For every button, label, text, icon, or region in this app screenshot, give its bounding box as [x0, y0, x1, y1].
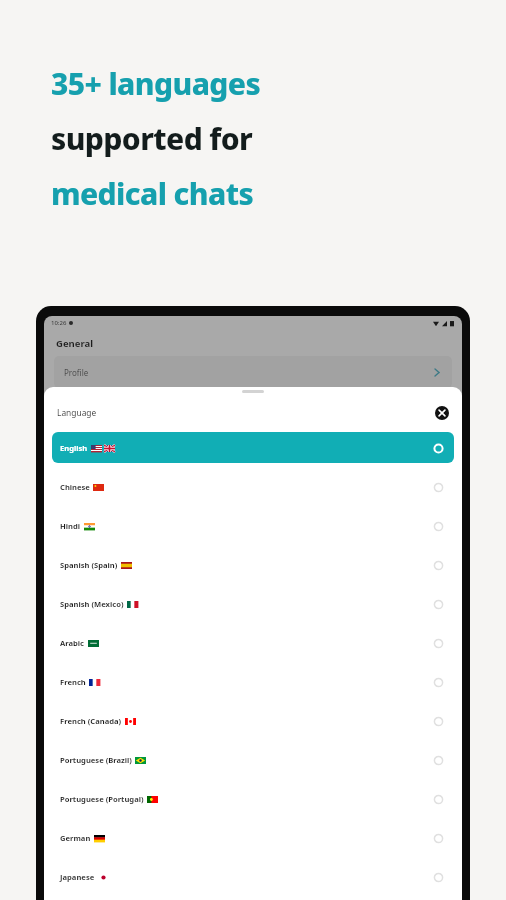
staticText: Hindi: [60, 521, 81, 531]
staticText: Japanese: [60, 872, 95, 882]
staticText: Portuguese (Portugal): [60, 794, 144, 804]
staticText: Chinese: [60, 482, 90, 492]
staticText: Spanish (Spain): [60, 560, 118, 570]
button[interactable]: Spanish (Spain): [52, 549, 454, 580]
staticText: medical chats: [51, 173, 254, 214]
staticText: Profile: [64, 367, 89, 378]
staticText: German: [60, 833, 91, 843]
button[interactable]: Profile: [54, 356, 452, 388]
staticText: English: [60, 443, 88, 453]
button[interactable]: English: [52, 432, 454, 463]
staticText: Language: [57, 407, 97, 418]
button[interactable]: Portuguese (Portugal): [52, 783, 454, 814]
button[interactable]: Arabic: [52, 627, 454, 658]
staticText: Arabic: [60, 638, 85, 648]
staticText: supported for: [51, 118, 253, 159]
staticText: French (Canada): [60, 716, 122, 726]
button[interactable]: Spanish (Mexico): [52, 588, 454, 619]
button[interactable]: French: [52, 666, 454, 697]
staticText: Spanish (Mexico): [60, 599, 124, 609]
staticText: French: [60, 677, 86, 687]
button[interactable]: German: [52, 822, 454, 853]
staticText: 35+ languages: [51, 63, 261, 104]
button[interactable]: Japanese: [52, 861, 454, 892]
staticText: Portuguese (Brazil): [60, 755, 132, 765]
button[interactable]: Chinese: [52, 471, 454, 502]
button[interactable]: Hindi: [52, 510, 454, 541]
button[interactable]: Close: [433, 404, 451, 422]
button[interactable]: French (Canada): [52, 705, 454, 736]
button[interactable]: Portuguese (Brazil): [52, 744, 454, 775]
staticText: General: [56, 337, 93, 350]
staticText: 10:26: [51, 319, 67, 327]
